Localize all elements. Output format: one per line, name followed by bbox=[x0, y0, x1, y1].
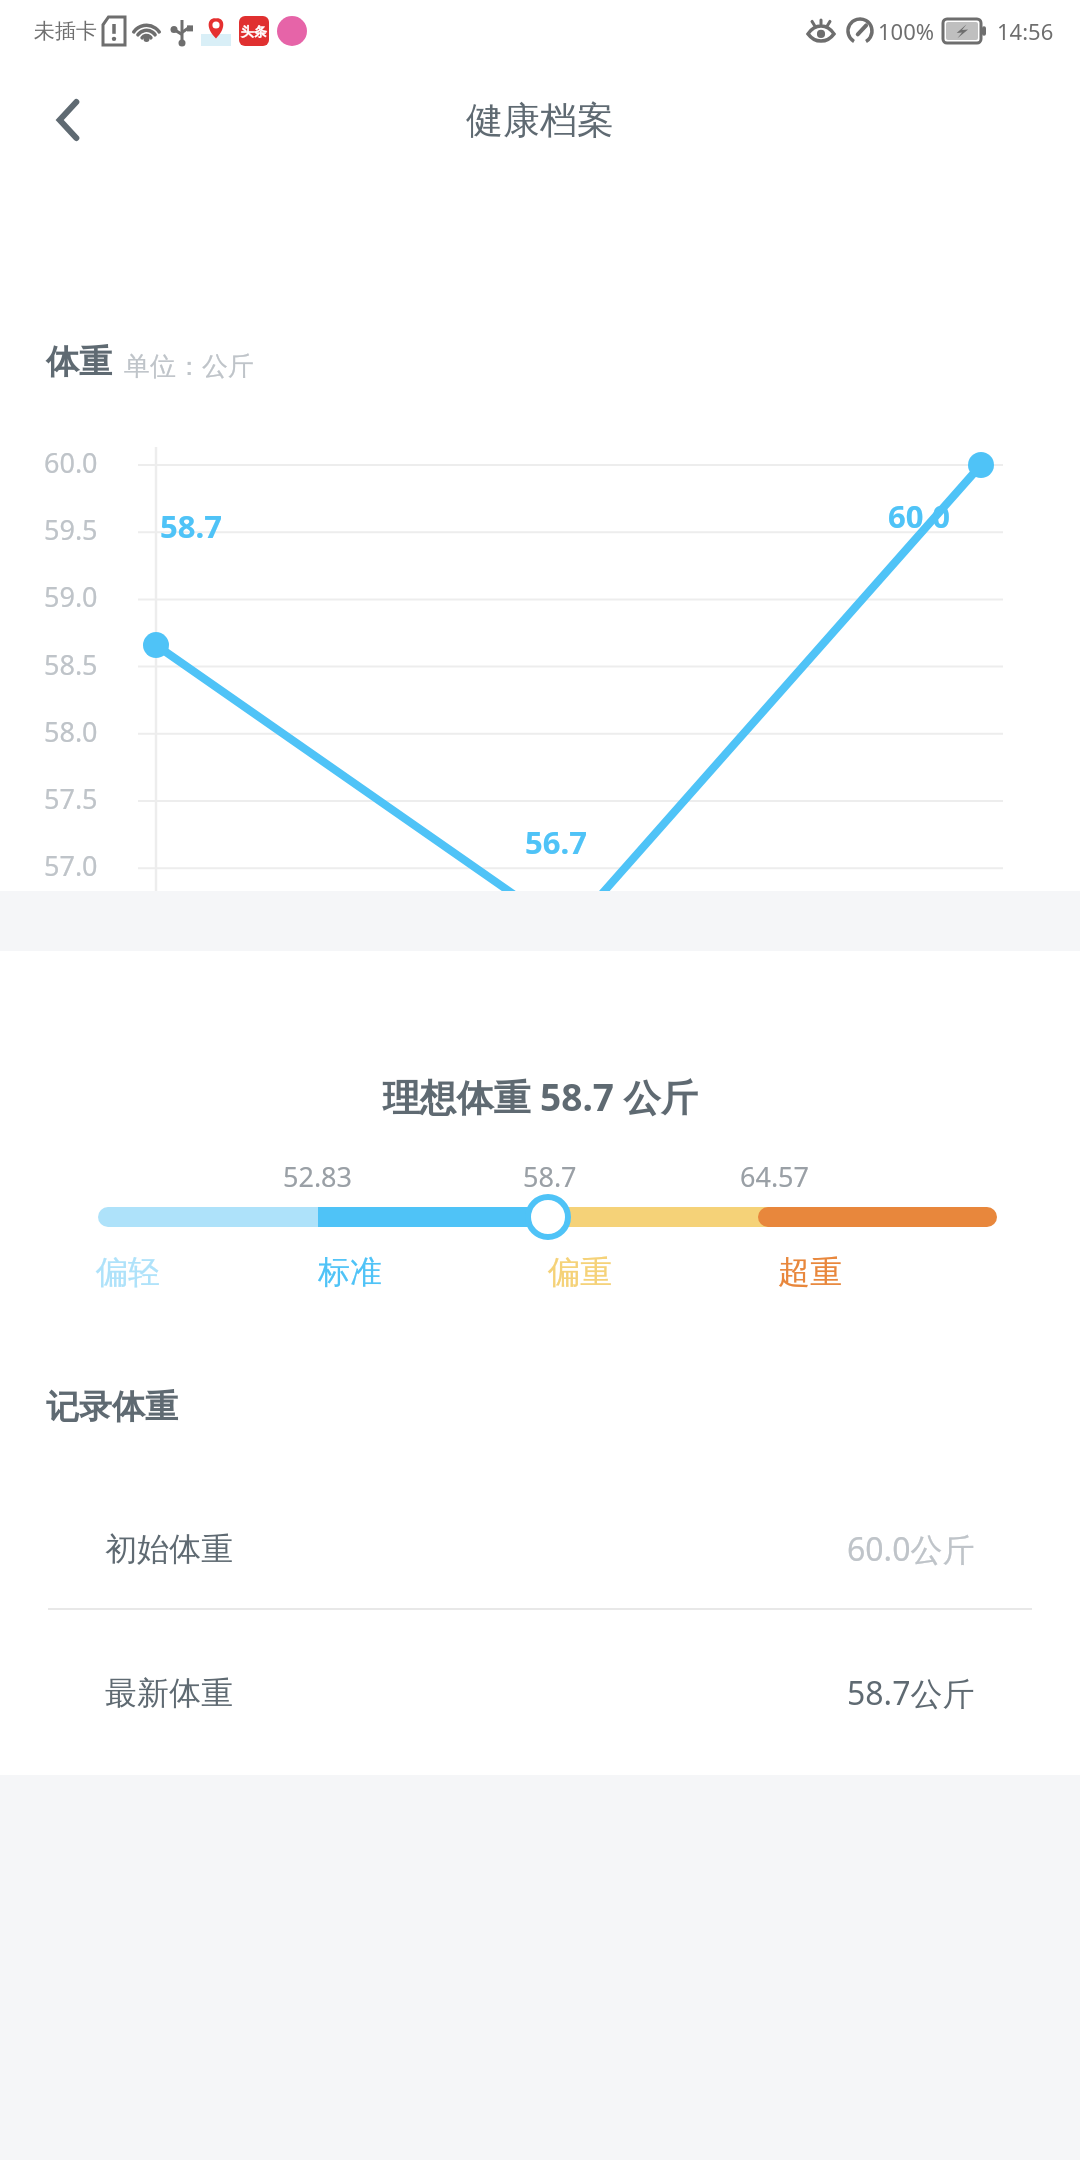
staticText: 59.5 bbox=[44, 511, 98, 548]
staticText: 56.7 bbox=[525, 821, 587, 863]
staticText: 64.57 bbox=[740, 1158, 810, 1195]
staticText: 06/16 bbox=[118, 925, 190, 962]
button[interactable]: Back bbox=[40, 92, 96, 148]
staticText: 偏重 bbox=[548, 1252, 612, 1292]
staticText: 单位：公斤 bbox=[124, 350, 254, 383]
staticText: 57.5 bbox=[44, 780, 98, 817]
staticText: 05/28 bbox=[531, 925, 603, 962]
staticText: 58.0 bbox=[44, 713, 98, 750]
staticText: 58.7 bbox=[523, 1158, 577, 1195]
staticText: 记录体重 bbox=[46, 1386, 178, 1428]
staticText: 60.0公斤 bbox=[847, 1527, 975, 1571]
staticText: 58.7公斤 bbox=[847, 1671, 975, 1715]
button[interactable]: 初始体重 bbox=[0, 1490, 1080, 1608]
staticText: 偏轻 bbox=[96, 1252, 160, 1292]
staticText: 初始体重 bbox=[105, 1529, 233, 1569]
staticText: 14:56 bbox=[997, 16, 1054, 46]
staticText: 57.0 bbox=[44, 847, 98, 884]
staticText: 体重 bbox=[46, 341, 112, 383]
staticText: 健康档案 bbox=[466, 97, 614, 144]
button[interactable]: 最新体重 bbox=[0, 1610, 1080, 1775]
staticText: 58.5 bbox=[44, 646, 98, 683]
staticText: 60.0 bbox=[44, 444, 98, 481]
staticText: 头条 bbox=[241, 23, 267, 39]
staticText: 52.83 bbox=[283, 1158, 353, 1195]
staticText: 59.0 bbox=[44, 578, 98, 615]
staticText: 100% bbox=[878, 16, 935, 46]
staticText: 60.0 bbox=[888, 495, 950, 537]
staticText: 超重 bbox=[778, 1252, 842, 1292]
staticText: 标准 bbox=[318, 1252, 382, 1292]
staticText: 未插卡 bbox=[34, 18, 97, 44]
staticText: 最新体重 bbox=[105, 1673, 233, 1713]
staticText: 理想体重 58.7 公斤 bbox=[0, 1071, 1080, 1122]
staticText: 58.7 bbox=[160, 505, 222, 547]
staticText: 05/27 bbox=[944, 925, 1016, 962]
